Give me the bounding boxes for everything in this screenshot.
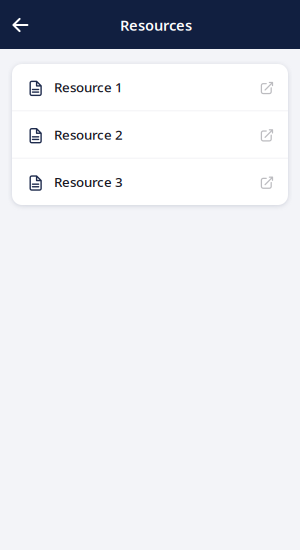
button[interactable]: Resource 2 [12, 111, 288, 158]
button[interactable]: Resource 3 [12, 159, 288, 205]
staticText: Resources [120, 15, 192, 35]
staticText: Resource 1 [54, 78, 123, 96]
staticText: Resource 3 [54, 173, 123, 191]
staticText: Resource 2 [54, 126, 123, 143]
button[interactable]: Resource 1 [12, 64, 288, 110]
button[interactable]: Back [4, 7, 36, 42]
